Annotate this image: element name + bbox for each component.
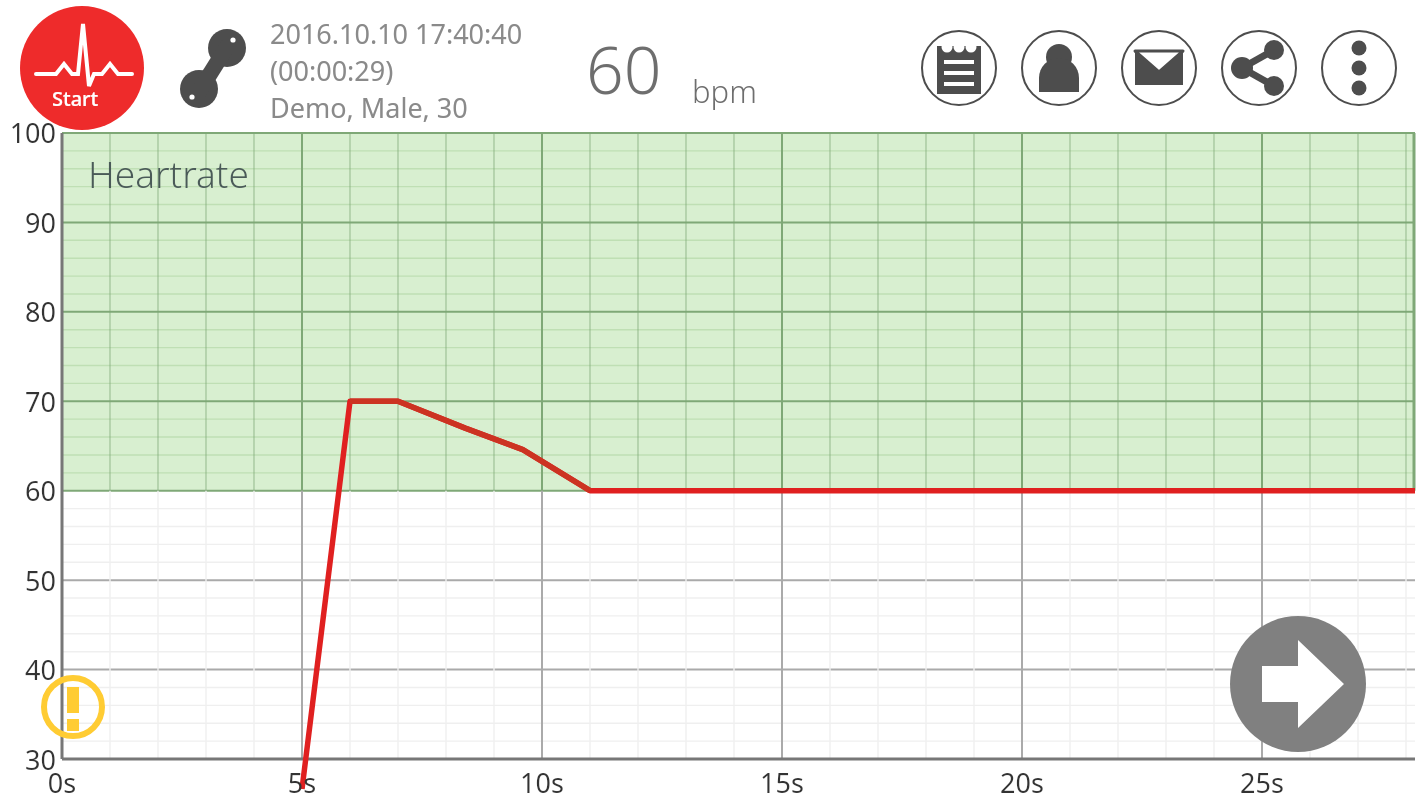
- staticText: 10s: [502, 764, 582, 798]
- staticText: Demo, Male, 30: [270, 89, 468, 126]
- staticText: 80: [0, 293, 56, 327]
- staticText: 60: [586, 23, 662, 113]
- button[interactable]: Notes: [924, 28, 1004, 108]
- staticText: 5s: [262, 764, 342, 798]
- button[interactable]: Next: [1230, 616, 1366, 752]
- button[interactable]: Sensor: [176, 24, 252, 100]
- button[interactable]: Profile: [1024, 28, 1104, 108]
- staticText: 25s: [1222, 764, 1302, 798]
- staticText: 60: [0, 472, 56, 506]
- button[interactable]: Start measurement: [20, 6, 144, 130]
- button[interactable]: Share: [1224, 28, 1304, 108]
- staticText: 2016.10.10 17:40:40: [270, 15, 523, 52]
- staticText: (00:00:29): [270, 52, 394, 89]
- staticText: bpm: [692, 70, 757, 112]
- button[interactable]: Mail: [1124, 28, 1204, 108]
- staticText: 20s: [982, 764, 1062, 798]
- staticText: 90: [0, 204, 56, 238]
- staticText: 30: [0, 741, 56, 775]
- button[interactable]: Warning: [44, 674, 104, 734]
- staticText: 100: [0, 114, 56, 148]
- staticText: Start: [52, 85, 99, 112]
- staticText: 40: [0, 651, 56, 685]
- staticText: 70: [0, 383, 56, 417]
- staticText: 15s: [742, 764, 822, 798]
- staticText: Heartrate: [88, 148, 249, 198]
- button[interactable]: More options: [1324, 28, 1404, 108]
- button[interactable]: [268, 14, 558, 118]
- staticText: 50: [0, 562, 56, 596]
- staticText: 0s: [22, 764, 102, 798]
